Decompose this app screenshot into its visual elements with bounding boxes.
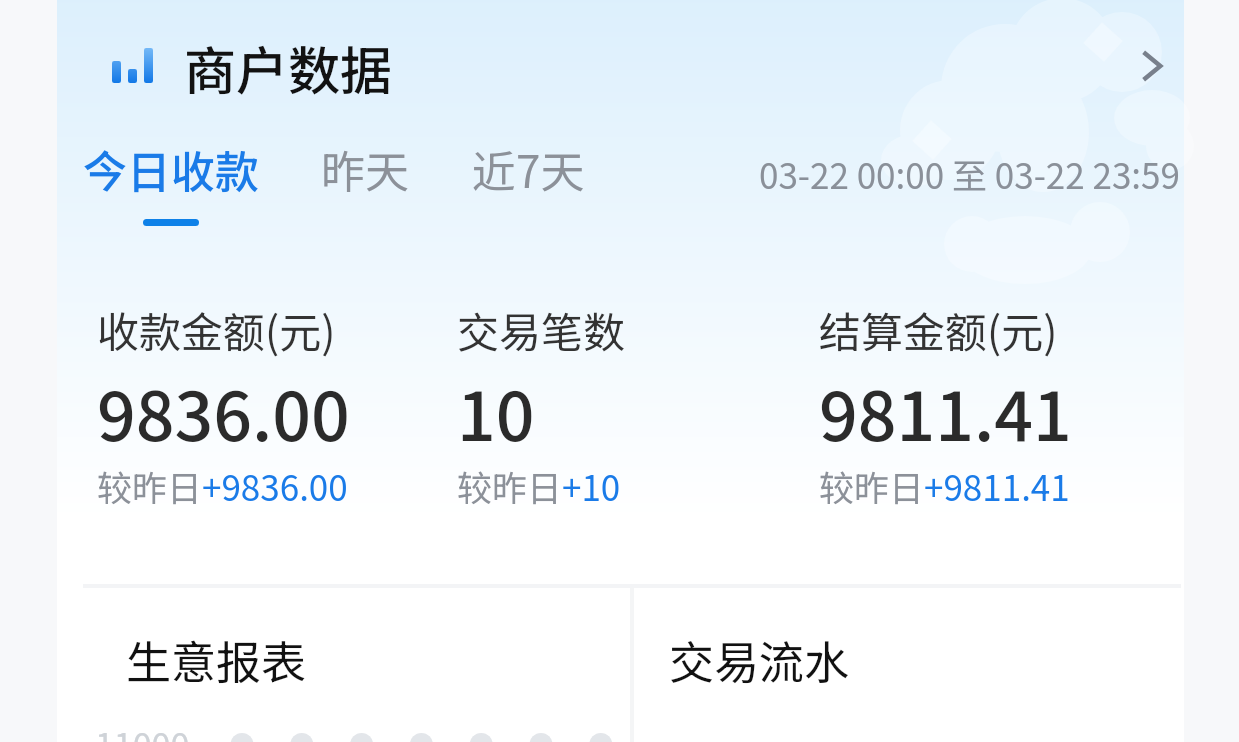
staticText: 9836.00	[97, 362, 350, 460]
button[interactable]: 近7天	[472, 125, 585, 213]
staticText: 9811.41	[819, 362, 1072, 460]
staticText: 较昨日+9836.00	[97, 460, 348, 511]
button[interactable]: 商户数据	[57, 30, 1184, 102]
staticText: 交易流水	[669, 627, 850, 692]
staticText: 今日收款	[83, 137, 259, 201]
staticText: 11000	[95, 719, 190, 742]
staticText: 交易笔数	[457, 299, 626, 360]
button[interactable]: 交易流水	[634, 588, 1184, 742]
staticText: 03-22 00:00 至 03-22 23:59	[759, 148, 1180, 199]
staticText: 昨天	[321, 137, 409, 201]
button[interactable]: 昨天	[321, 125, 409, 213]
staticText: 较昨日+10	[457, 460, 621, 511]
staticText: 较昨日+9811.41	[819, 460, 1070, 511]
button[interactable]: 今日收款	[83, 125, 259, 238]
staticText: 收款金额(元)	[97, 299, 336, 360]
staticText: 生意报表	[126, 627, 307, 692]
staticText: 结算金额(元)	[819, 299, 1058, 360]
button[interactable]: 生意报表	[57, 588, 630, 742]
staticText: 商户数据	[184, 30, 393, 102]
staticText: 10	[457, 362, 535, 460]
button[interactable]: 查看更多	[1120, 34, 1184, 98]
staticText: 近7天	[472, 137, 585, 201]
